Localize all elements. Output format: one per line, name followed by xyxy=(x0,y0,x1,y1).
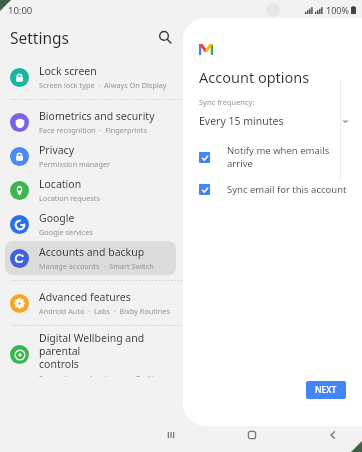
button[interactable]: Back xyxy=(322,424,344,446)
button[interactable]: Advanced features xyxy=(5,286,176,320)
staticText: Permission manager xyxy=(39,159,111,169)
button[interactable]: Notify me when emails arrive xyxy=(199,144,354,170)
staticText: Accounts and backup xyxy=(39,245,145,259)
staticText: Settings xyxy=(10,27,69,48)
staticText: Android Auto · Labs · Bixby Routines xyxy=(39,306,170,316)
staticText: Privacy xyxy=(39,143,75,157)
button[interactable]: Search xyxy=(153,25,177,49)
staticText: Sync email for this account xyxy=(227,183,347,196)
staticText: Google services xyxy=(39,227,93,237)
staticText: Advanced features xyxy=(39,290,131,304)
button[interactable]: Biometrics and security xyxy=(5,105,176,139)
staticText: 100% xyxy=(326,4,349,16)
staticText: Digital Wellbeing and parental controls xyxy=(39,331,176,371)
staticText: Notify me when emails arrive xyxy=(227,144,354,170)
button[interactable]: Every 15 minutes xyxy=(199,114,350,128)
button[interactable]: Digital Wellbeing and parental controls xyxy=(5,331,176,377)
button[interactable]: Lock screen xyxy=(5,60,176,94)
staticText: Face recognition · Fingerprints xyxy=(39,125,147,135)
staticText: Location requests xyxy=(39,193,100,203)
staticText: Screen lock type · Always On Display xyxy=(39,80,167,90)
staticText: Lock screen xyxy=(39,64,97,78)
staticText: Biometrics and security xyxy=(39,109,155,123)
staticText: Sync frequency: xyxy=(199,97,255,107)
staticText: Location xyxy=(39,177,82,191)
staticText: NEXT xyxy=(315,384,337,396)
staticText: Every 15 minutes xyxy=(199,114,284,128)
button[interactable]: Recents xyxy=(160,424,182,446)
button[interactable]: Privacy xyxy=(5,139,176,173)
button[interactable]: Google xyxy=(5,207,176,241)
button[interactable]: NEXT xyxy=(306,381,346,399)
button[interactable]: Accounts and backup xyxy=(5,241,176,275)
button[interactable]: Location xyxy=(5,173,176,207)
staticText: 10:00 xyxy=(8,4,33,17)
staticText: Account options xyxy=(199,67,310,87)
staticText: Google xyxy=(39,211,75,225)
button[interactable]: Sync email for this account xyxy=(199,183,354,196)
staticText: Screen time · App timers · Bedtime mode xyxy=(39,373,176,377)
button[interactable]: Home xyxy=(241,424,263,446)
staticText: Manage accounts · Smart Switch xyxy=(39,261,154,271)
